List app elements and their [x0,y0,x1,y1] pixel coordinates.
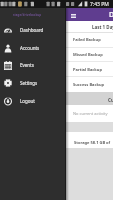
staticText: Events [20,62,34,68]
button[interactable]: Partial Backup [0,62,113,77]
staticText: Storage 58.1 GB of 100 GB [74,140,113,145]
button[interactable]: Success Backup [0,77,113,92]
button[interactable]: Settings [0,74,66,92]
button[interactable]: Accounts [0,39,66,57]
button[interactable]: Dashboard [0,21,66,39]
staticText: 7:43 PM [90,1,109,8]
staticText: Missed Backup [73,52,103,57]
staticText: Dashboard [20,27,44,33]
button[interactable]: Events [0,56,66,74]
button[interactable]: Logout [0,92,66,110]
staticText: Accounts [20,45,40,51]
staticText: Settings [20,80,38,86]
button[interactable]: Open navigation drawer [68,10,79,21]
button[interactable]: Last 1 Day [0,21,113,32]
staticText: Failed Backup [73,37,101,42]
staticText: No current activity [73,111,108,116]
staticText: Success Backup [73,82,105,87]
staticText: Last 1 Day [92,24,113,30]
staticText: Current Activity [108,97,113,103]
staticText: Partial Backup [73,67,102,72]
button[interactable]: Storage 58.1 GB of 100 GB [0,132,113,148]
button[interactable]: Missed Backup [0,47,113,62]
staticText: Logout [20,98,35,104]
button[interactable]: Failed Backup [0,32,113,47]
staticText: stage/drivebackup [13,13,42,17]
staticText: Dashboard [109,10,113,20]
